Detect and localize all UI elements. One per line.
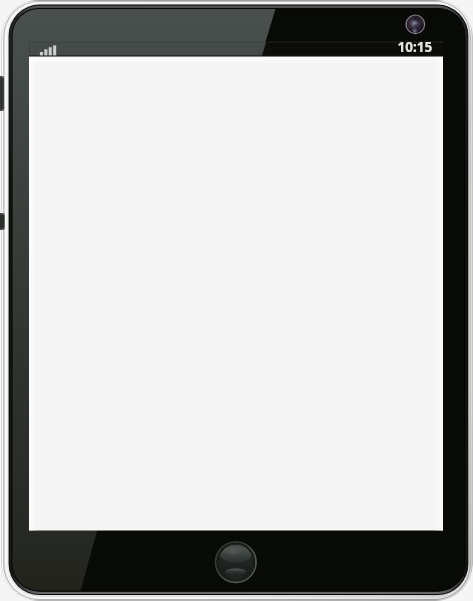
button[interactable]: Front camera <box>404 13 427 36</box>
button[interactable]: Power <box>0 213 5 230</box>
button[interactable]: Volume <box>0 76 5 111</box>
button[interactable]: Home <box>214 541 258 584</box>
button[interactable]: Screen <box>29 56 443 530</box>
